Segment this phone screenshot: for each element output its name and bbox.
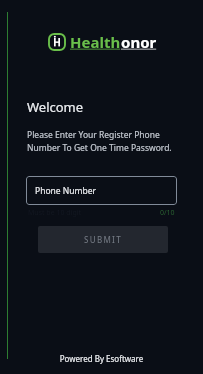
staticText: Please Enter Your Register Phone Number … bbox=[27, 129, 172, 154]
button[interactable]: Phone Number bbox=[26, 176, 177, 205]
staticText: Powered By Esoftware bbox=[0, 353, 203, 364]
staticText: 0/10 bbox=[160, 208, 175, 218]
staticText: SUBMIT bbox=[84, 234, 123, 245]
staticText: onor bbox=[121, 32, 157, 52]
button[interactable]: SUBMIT bbox=[38, 226, 168, 253]
staticText: Welcome bbox=[27, 98, 84, 116]
staticText: Phone Number bbox=[35, 185, 96, 197]
other: Healthonor logo bbox=[47, 32, 67, 52]
staticText: Health bbox=[70, 32, 121, 52]
